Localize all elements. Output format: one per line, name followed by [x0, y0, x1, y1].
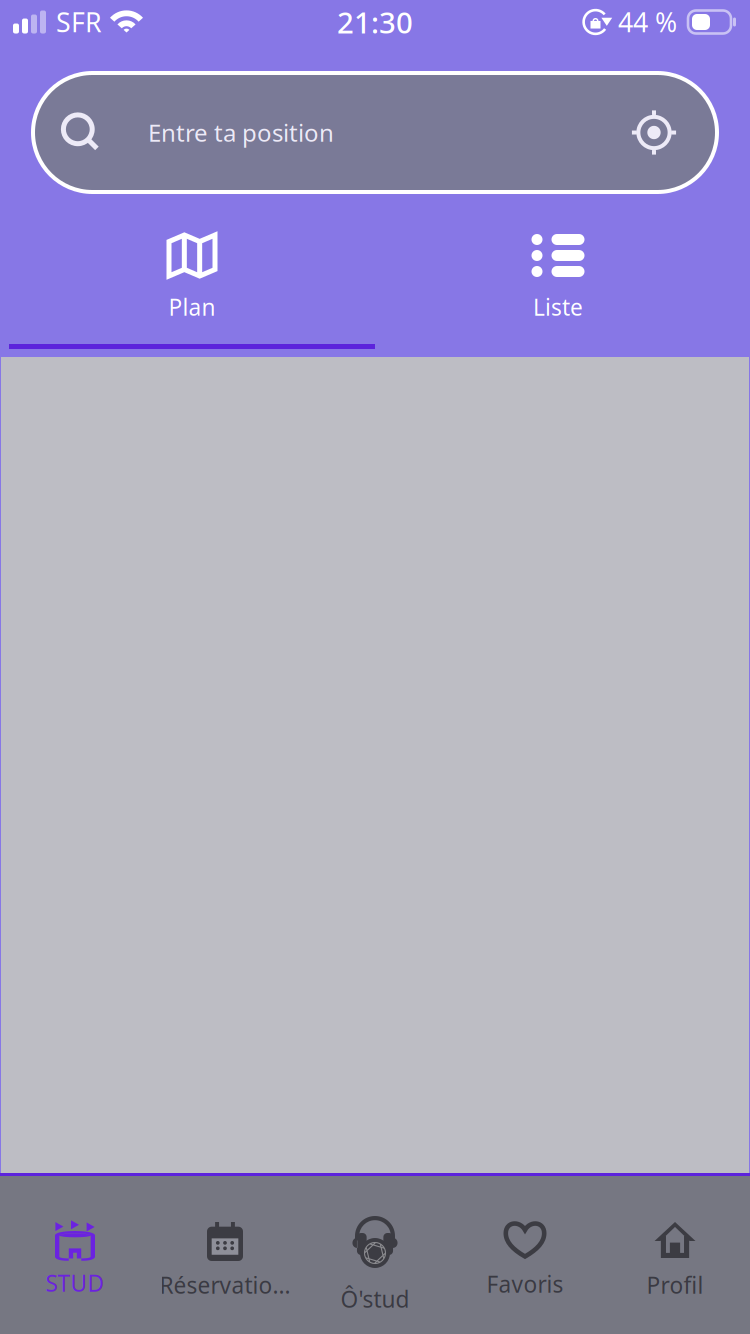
staticText: STUD — [45, 1268, 104, 1298]
staticText: Ô'stud — [340, 1284, 409, 1314]
button[interactable]: Liste — [375, 210, 741, 357]
staticText: 21:30 — [337, 2, 413, 41]
staticText: 44 % — [618, 4, 677, 40]
button[interactable]: STUD — [0, 1176, 150, 1334]
button[interactable]: Entre ta position — [33, 73, 717, 192]
staticText: Plan — [168, 292, 215, 322]
staticText: SFR — [56, 4, 102, 40]
button[interactable]: Ô'stud — [300, 1176, 450, 1334]
staticText: Entre ta position — [148, 117, 334, 148]
button[interactable]: Profil — [600, 1176, 750, 1334]
button[interactable]: Réservatio... — [150, 1176, 300, 1334]
staticText: Réservatio... — [159, 1270, 290, 1300]
staticText: Liste — [533, 292, 583, 322]
button[interactable]: Favoris — [450, 1176, 600, 1334]
button[interactable]: Plan — [9, 210, 375, 357]
staticText: Favoris — [486, 1269, 563, 1299]
staticText: Profil — [646, 1270, 703, 1300]
